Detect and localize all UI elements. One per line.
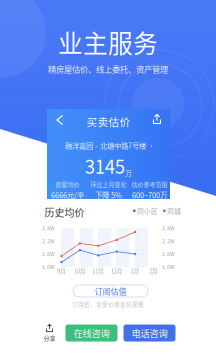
staticText: 分享 [43, 334, 55, 342]
staticText: 业主服务 [58, 24, 158, 60]
staticText: 电话咨询 [131, 326, 167, 340]
staticText: 在线咨询 [73, 326, 109, 340]
staticText: 同小区 [137, 206, 158, 216]
staticText: 1月 [131, 267, 140, 275]
staticText: 1.0w [42, 262, 54, 270]
button[interactable]: Back [54, 114, 65, 125]
button[interactable]: 电话咨询 [123, 324, 175, 341]
staticText: 估价参考范围 [131, 180, 167, 188]
staticText: 11月 [92, 267, 104, 275]
staticText: 6666元/平 [51, 189, 84, 200]
staticText: 2.8w [42, 224, 54, 232]
staticText: 3145 [85, 152, 125, 179]
staticText: 2月 [149, 267, 158, 275]
staticText: 同城 [167, 206, 181, 216]
button[interactable]: 订阅估值 [73, 285, 148, 297]
staticText: 10月 [74, 267, 86, 275]
staticText: 1.0w [162, 262, 174, 270]
staticText: 精房屋估价、线上委托、资产管理 [48, 63, 168, 75]
staticText: 12月 [111, 267, 123, 275]
button[interactable]: 分享 [39, 324, 59, 342]
staticText: 万 [125, 168, 132, 178]
staticText: 下降 5% [95, 189, 122, 200]
staticText: 1.6w [42, 249, 54, 258]
button[interactable]: 在线咨询 [65, 324, 117, 341]
staticText: 2.2w [162, 237, 174, 245]
staticText: 1.6w [162, 249, 174, 258]
staticText: 融洋嘉园 - 北塘中路7号楼 › [65, 140, 152, 151]
staticText: 2.2w [42, 237, 54, 245]
staticText: 600~700万 [132, 189, 167, 200]
staticText: 环比上月变化 [90, 180, 126, 188]
staticText: 买卖估价 [86, 114, 130, 129]
staticText: 9月 [57, 267, 66, 275]
staticText: 房屋均价 [55, 180, 79, 188]
staticText: 订阅估值 [94, 285, 126, 297]
staticText: 2.8w [162, 224, 174, 232]
staticText: 历史均价 [44, 205, 84, 219]
staticText: 订阅后，享受价格变化提醒 [72, 300, 144, 308]
button[interactable]: Share [152, 114, 162, 124]
